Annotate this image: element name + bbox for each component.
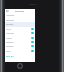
button[interactable]: Backup xyxy=(5,40,35,44)
button[interactable]: Sounds xyxy=(5,31,35,35)
staticText: Wi-Fi xyxy=(6,28,31,31)
staticText: Backup xyxy=(6,41,31,44)
staticText: Sounds xyxy=(6,32,31,35)
staticText: General xyxy=(6,19,34,22)
staticText: See all xyxy=(6,54,14,57)
staticText: Display xyxy=(6,23,14,26)
button[interactable]: Back xyxy=(5,9,9,13)
button[interactable]: Home xyxy=(17,63,23,69)
button[interactable]: Account xyxy=(5,13,35,17)
staticText: Sync xyxy=(6,50,31,53)
button[interactable]: Sync xyxy=(5,49,35,53)
button[interactable]: Wi-Fi xyxy=(5,27,35,31)
button[interactable]: General xyxy=(5,18,35,22)
staticText: Alerts xyxy=(6,37,31,40)
button[interactable]: Alerts xyxy=(5,36,35,40)
button[interactable]: Display xyxy=(5,22,35,27)
button[interactable]: Privacy xyxy=(5,44,35,48)
button[interactable]: See all xyxy=(5,53,35,57)
staticText: Settings xyxy=(15,10,24,13)
staticText: Account xyxy=(6,14,34,17)
staticText: Privacy xyxy=(6,45,31,48)
